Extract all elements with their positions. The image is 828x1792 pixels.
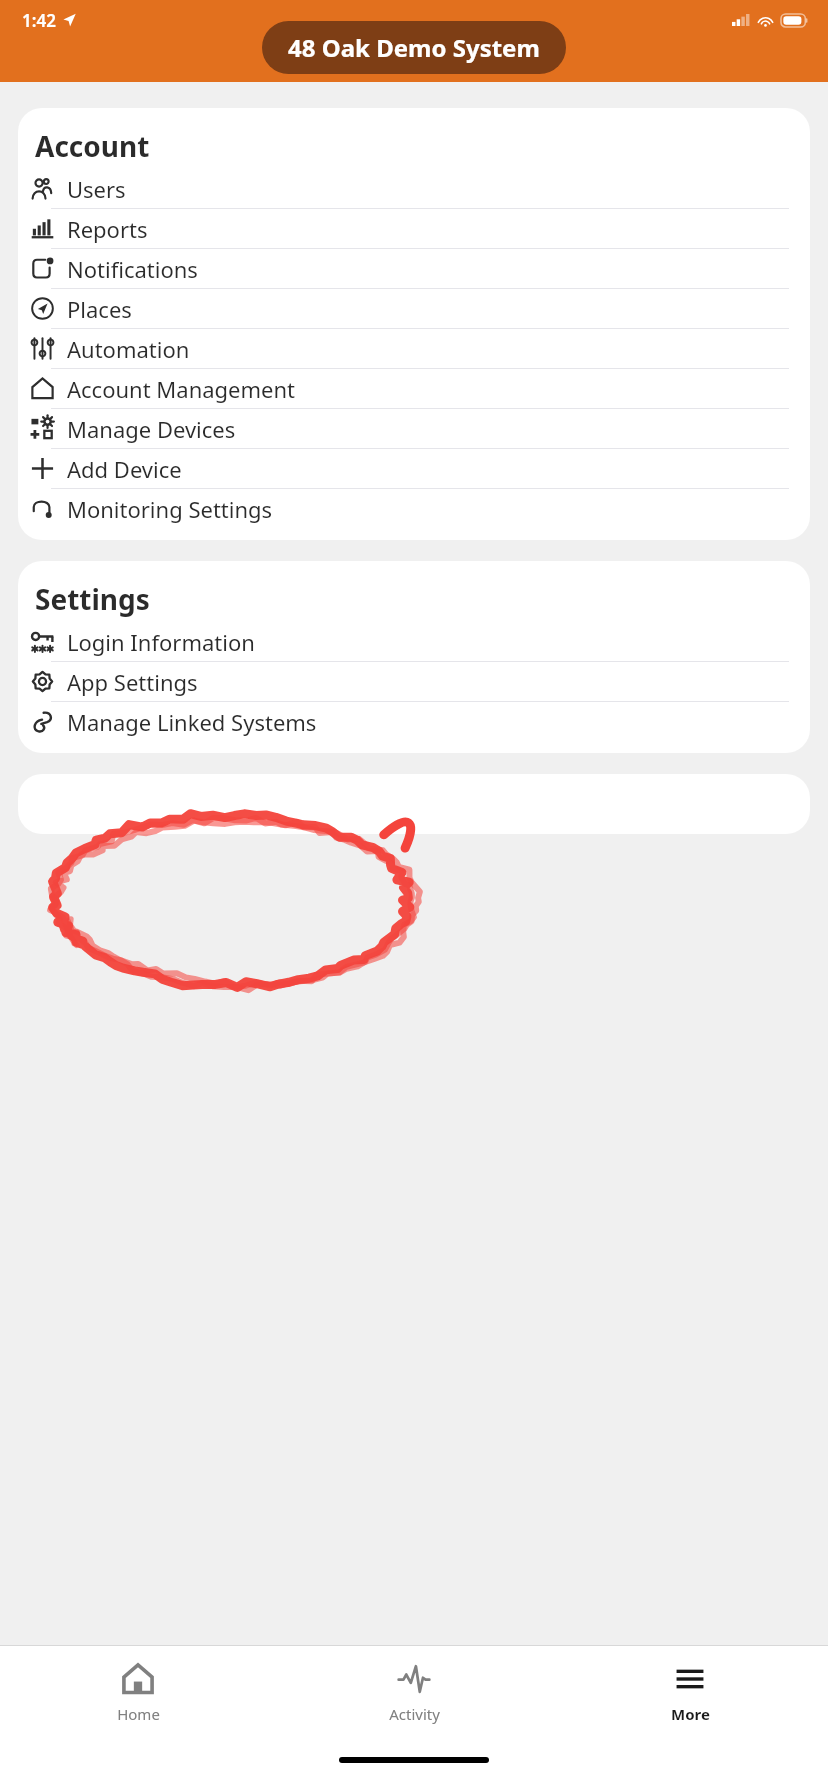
- button[interactable]: Notifications: [18, 249, 810, 288]
- button[interactable]: Account Management: [18, 369, 810, 408]
- staticText: Home: [117, 1704, 160, 1724]
- button[interactable]: More: [552, 1646, 828, 1749]
- staticText: Reports: [67, 214, 148, 244]
- staticText: Notifications: [67, 254, 198, 284]
- button[interactable]: Automation: [18, 329, 810, 368]
- staticText: Monitoring Settings: [67, 494, 273, 524]
- staticText: Automation: [67, 334, 190, 364]
- button[interactable]: 48 Oak Demo System: [262, 21, 566, 74]
- staticText: Manage Devices: [67, 414, 236, 444]
- staticText: 1:42: [22, 9, 56, 32]
- staticText: Places: [67, 294, 132, 324]
- button[interactable]: Places: [18, 289, 810, 328]
- button[interactable]: Manage Linked Systems: [18, 702, 810, 741]
- staticText: Manage Linked Systems: [67, 707, 317, 737]
- staticText: Settings: [35, 580, 150, 618]
- button[interactable]: Home: [0, 1646, 276, 1749]
- button[interactable]: Activity: [276, 1646, 552, 1749]
- staticText: Account Management: [67, 374, 296, 404]
- staticText: Add Device: [67, 454, 182, 484]
- button[interactable]: Add Device: [18, 449, 810, 488]
- staticText: Account: [35, 127, 150, 165]
- button[interactable]: Manage Devices: [18, 409, 810, 448]
- staticText: Activity: [389, 1704, 440, 1724]
- button[interactable]: Users: [18, 169, 810, 208]
- staticText: App Settings: [67, 667, 198, 697]
- button[interactable]: Reports: [18, 209, 810, 248]
- staticText: 48 Oak Demo System: [288, 31, 540, 64]
- button[interactable]: App Settings: [18, 662, 810, 701]
- button[interactable]: Monitoring Settings: [18, 489, 810, 528]
- button[interactable]: Login Information: [18, 622, 810, 661]
- staticText: Users: [67, 174, 126, 204]
- staticText: Login Information: [67, 627, 255, 657]
- staticText: More: [671, 1704, 710, 1724]
